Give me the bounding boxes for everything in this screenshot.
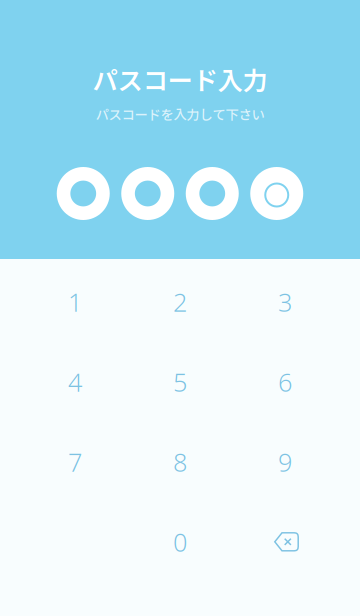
button[interactable]: 4 (22, 342, 127, 422)
staticText: 1 (68, 285, 82, 319)
button[interactable]: 8 (127, 422, 232, 502)
staticText: 6 (278, 365, 292, 399)
button[interactable]: 3 (232, 262, 337, 342)
staticText: パスコードを入力して下さい (95, 104, 264, 124)
button[interactable]: 1 (22, 262, 127, 342)
staticText: 0 (173, 525, 187, 559)
button[interactable]: 9 (232, 422, 337, 502)
button[interactable]: 2 (127, 262, 232, 342)
button[interactable]: 6 (232, 342, 337, 422)
staticText: 4 (68, 365, 82, 399)
button[interactable]: 0 (127, 502, 232, 582)
staticText: 7 (68, 445, 82, 479)
staticText: 5 (173, 365, 187, 399)
staticText: 3 (278, 285, 292, 319)
staticText: パスコード入力 (92, 61, 267, 97)
button[interactable]: 7 (22, 422, 127, 502)
staticText: 2 (173, 285, 187, 319)
button[interactable]: Delete (232, 502, 337, 582)
staticText: 9 (278, 445, 292, 479)
button[interactable]: 5 (127, 342, 232, 422)
staticText: 8 (173, 445, 187, 479)
